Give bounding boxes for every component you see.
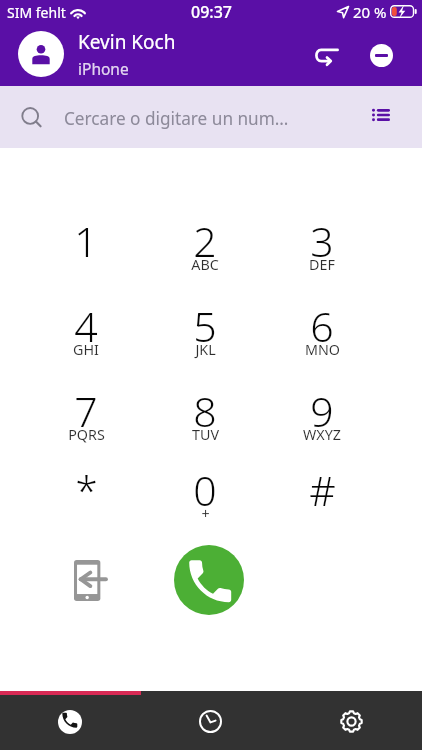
button[interactable]: Call [174, 545, 244, 615]
button[interactable]: 7 [27, 383, 145, 468]
staticText: Kevin Koch [78, 29, 176, 55]
staticText: PQRS [68, 425, 105, 444]
staticText: 9 [310, 383, 334, 439]
button[interactable]: Settings [281, 691, 422, 750]
button[interactable]: Contact avatar [18, 31, 64, 77]
staticText: 8 [193, 383, 217, 439]
staticText: GHI [73, 340, 99, 359]
staticText: + [201, 504, 210, 523]
button[interactable]: 5 [146, 298, 264, 383]
button[interactable]: Cercare o digitare un num… [0, 86, 422, 148]
staticText: 7 [74, 383, 98, 439]
button[interactable]: 8 [146, 383, 264, 468]
button[interactable]: 6 [263, 298, 381, 383]
button[interactable]: 0 [146, 462, 264, 542]
staticText: MNO [305, 340, 340, 359]
staticText: JKL [195, 340, 216, 359]
staticText: DEF [309, 255, 335, 274]
staticText: Cercare o digitare un num… [64, 107, 289, 130]
staticText: 3 [310, 213, 334, 269]
button[interactable]: Keypad [0, 691, 140, 750]
staticText: 5 [193, 298, 217, 354]
staticText: SIM fehlt [7, 3, 66, 22]
staticText: 09:37 [191, 1, 232, 23]
button[interactable]: Contacts [359, 93, 403, 137]
staticText: # [309, 462, 336, 518]
button[interactable]: 2 [146, 213, 264, 298]
button[interactable]: End call [359, 33, 403, 77]
staticText: 1 [74, 213, 98, 269]
staticText: iPhone [78, 58, 129, 79]
button[interactable]: Add contact [63, 552, 119, 608]
staticText: WXYZ [303, 425, 341, 444]
button[interactable]: Recents [140, 691, 281, 750]
button[interactable]: 4 [27, 298, 145, 383]
staticText: * [75, 462, 98, 518]
staticText: 4 [74, 298, 98, 354]
button[interactable]: 3 [263, 213, 381, 298]
staticText: ABC [191, 255, 219, 274]
staticText: TUV [192, 425, 219, 444]
button[interactable]: 9 [263, 383, 381, 468]
button[interactable]: Search [10, 96, 54, 140]
button[interactable]: 1 [27, 213, 145, 298]
staticText: 6 [310, 298, 334, 354]
button[interactable]: # [263, 462, 381, 542]
button[interactable]: Transfer call [305, 35, 349, 79]
staticText: 20 % [353, 2, 387, 22]
staticText: 0 [193, 462, 217, 518]
staticText: 2 [193, 213, 217, 269]
button[interactable]: * [27, 462, 145, 542]
